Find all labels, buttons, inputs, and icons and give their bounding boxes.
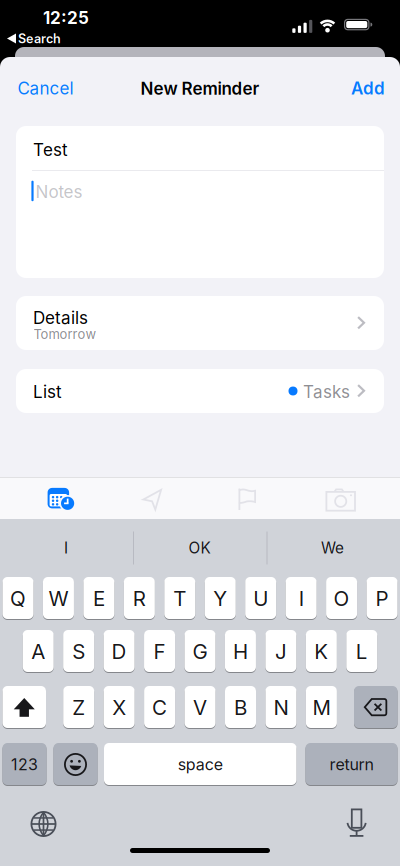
staticText: Notes: [35, 181, 82, 202]
staticText: New Reminder: [140, 78, 259, 99]
staticText: space: [178, 755, 223, 774]
button[interactable]: [346, 808, 366, 837]
button[interactable]: [30, 811, 56, 837]
button[interactable]: [325, 488, 356, 511]
button[interactable]: R: [124, 577, 155, 620]
staticText: Add: [351, 78, 385, 99]
button[interactable]: space: [104, 743, 296, 786]
button[interactable]: B: [225, 686, 256, 729]
staticText: R: [133, 586, 146, 611]
staticText: A: [31, 639, 45, 664]
button[interactable]: [53, 743, 97, 786]
staticText: N: [273, 695, 288, 720]
staticText: return: [329, 755, 373, 774]
staticText: Cancel: [17, 78, 73, 99]
button[interactable]: A: [23, 630, 54, 673]
button[interactable]: K: [306, 630, 337, 673]
staticText: M: [312, 695, 330, 720]
staticText: O: [334, 586, 350, 611]
button[interactable]: U: [245, 577, 276, 620]
staticText: B: [234, 695, 247, 720]
button[interactable]: X: [104, 686, 135, 729]
staticText: Test: [33, 139, 68, 160]
button[interactable]: Notes: [16, 170, 384, 278]
button[interactable]: [2, 686, 46, 729]
button[interactable]: S: [63, 630, 94, 673]
button[interactable]: C: [144, 686, 175, 729]
button[interactable]: Details: [16, 296, 384, 350]
staticText: X: [112, 695, 126, 720]
staticText: D: [112, 639, 127, 664]
button[interactable]: We: [267, 531, 397, 565]
button[interactable]: Y: [205, 577, 236, 620]
staticText: Z: [72, 695, 85, 720]
button[interactable]: I: [1, 531, 131, 565]
button[interactable]: OK: [134, 531, 264, 565]
button[interactable]: return: [305, 743, 397, 786]
staticText: 123: [11, 755, 38, 774]
staticText: W: [48, 586, 68, 611]
button[interactable]: H: [225, 630, 256, 673]
staticText: J: [275, 639, 287, 664]
staticText: P: [376, 586, 389, 611]
staticText: We: [321, 539, 344, 557]
staticText: Tasks: [303, 381, 350, 402]
staticText: 12:25: [43, 7, 89, 28]
staticText: Y: [213, 586, 227, 611]
staticText: F: [154, 639, 166, 664]
staticText: Tomorrow: [33, 326, 96, 342]
staticText: E: [93, 586, 105, 611]
staticText: U: [253, 586, 268, 611]
staticText: C: [152, 695, 167, 720]
staticText: I: [64, 539, 68, 557]
staticText: Details: [33, 307, 88, 328]
button[interactable]: E: [83, 577, 114, 620]
button[interactable]: [142, 489, 162, 511]
button[interactable]: [238, 488, 256, 510]
staticText: S: [72, 639, 85, 664]
button[interactable]: G: [184, 630, 215, 673]
staticText: I: [299, 586, 304, 611]
staticText: Search: [18, 31, 61, 46]
staticText: OK: [188, 539, 210, 557]
staticText: L: [356, 639, 368, 664]
staticText: K: [314, 639, 328, 664]
staticText: Q: [10, 586, 26, 611]
button[interactable]: T: [164, 577, 195, 620]
button[interactable]: D: [104, 630, 135, 673]
button[interactable]: J: [265, 630, 296, 673]
button[interactable]: 123: [2, 743, 46, 786]
button[interactable]: M: [306, 686, 337, 729]
staticText: List: [33, 381, 62, 402]
button[interactable]: P: [367, 577, 398, 620]
button[interactable]: List: [16, 369, 384, 413]
button[interactable]: [354, 686, 397, 729]
staticText: T: [173, 586, 186, 611]
button[interactable]: Add: [351, 78, 385, 99]
button[interactable]: F: [144, 630, 175, 673]
staticText: G: [192, 639, 207, 664]
button[interactable]: N: [265, 686, 296, 729]
staticText: H: [233, 639, 248, 664]
button[interactable]: W: [43, 577, 74, 620]
button[interactable]: O: [326, 577, 357, 620]
button[interactable]: L: [346, 630, 377, 673]
button[interactable]: Test: [16, 126, 384, 170]
button[interactable]: I: [286, 577, 317, 620]
button[interactable]: [45, 485, 75, 511]
button[interactable]: Cancel: [17, 78, 73, 99]
button[interactable]: Q: [2, 577, 33, 620]
staticText: V: [193, 695, 207, 720]
button[interactable]: Z: [63, 686, 94, 729]
button[interactable]: V: [185, 686, 216, 729]
